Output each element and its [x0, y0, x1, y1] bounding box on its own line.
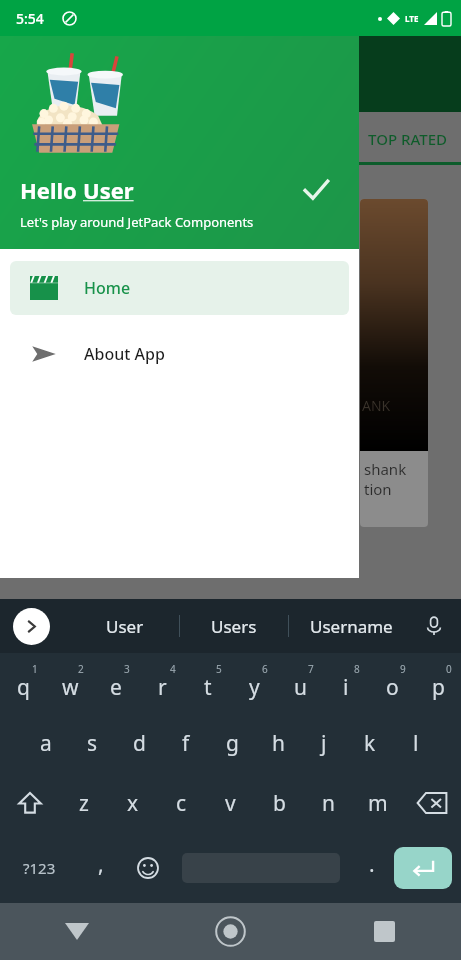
button[interactable]: k	[347, 713, 393, 773]
staticText: 6	[262, 662, 268, 676]
button[interactable]: f	[163, 713, 209, 773]
staticText: About App	[84, 343, 165, 365]
button[interactable]: r	[139, 653, 185, 713]
button[interactable]: j	[301, 713, 347, 773]
button[interactable]: Shift	[0, 773, 59, 833]
button[interactable]: w	[47, 653, 93, 713]
staticText: m	[368, 789, 388, 818]
button[interactable]: Home	[10, 261, 349, 315]
staticText: ?123	[23, 858, 56, 878]
staticText: 0	[446, 662, 452, 676]
staticText: f	[182, 729, 190, 758]
staticText: 5	[216, 662, 222, 676]
staticText: n	[322, 789, 335, 818]
button[interactable]: ?123	[0, 833, 78, 903]
staticText: 3	[124, 662, 130, 676]
staticText: TOP RATED	[368, 129, 447, 149]
staticText: v	[225, 789, 236, 818]
button[interactable]: Enter	[394, 847, 452, 889]
staticText: o	[386, 673, 399, 702]
staticText: ,	[98, 850, 104, 879]
staticText: 4	[170, 662, 176, 676]
button[interactable]: Users	[180, 599, 288, 653]
staticText: j	[321, 729, 327, 758]
button[interactable]: n	[304, 773, 353, 833]
button[interactable]: l	[393, 713, 439, 773]
staticText: s	[87, 729, 98, 758]
button[interactable]: Home	[153, 903, 307, 960]
staticText: 1	[32, 662, 38, 676]
button[interactable]: a	[22, 713, 69, 773]
staticText: 8	[354, 662, 360, 676]
staticText: x	[127, 789, 139, 818]
button[interactable]: User	[71, 599, 179, 653]
staticText: l	[413, 729, 419, 758]
staticText: 2	[78, 662, 84, 676]
button[interactable]: d	[116, 713, 163, 773]
button[interactable]: b	[255, 773, 304, 833]
button[interactable]: v	[206, 773, 255, 833]
button[interactable]: Backspace	[402, 773, 461, 833]
button[interactable]: e	[93, 653, 139, 713]
staticText: u	[294, 673, 307, 702]
staticText: ANK	[362, 396, 391, 415]
button[interactable]: Recent apps	[307, 903, 461, 960]
button[interactable]: o	[369, 653, 415, 713]
staticText: Let's play around JetPack Components	[20, 213, 254, 231]
staticText: p	[432, 673, 445, 702]
button[interactable]: About App	[10, 327, 349, 381]
staticText: LTE	[405, 13, 419, 24]
staticText: Username	[310, 615, 393, 638]
staticText: 7	[308, 662, 314, 676]
staticText: shank	[364, 459, 407, 479]
staticText: .	[369, 850, 375, 879]
staticText: t	[204, 673, 212, 702]
staticText: z	[79, 789, 89, 818]
staticText: User	[83, 175, 134, 205]
staticText: c	[176, 789, 187, 818]
button[interactable]: Back	[0, 903, 153, 960]
staticText: 9	[400, 662, 406, 676]
staticText: b	[273, 789, 286, 818]
staticText: e	[110, 673, 122, 702]
staticText: h	[272, 729, 285, 758]
button[interactable]: More suggestions	[13, 608, 50, 645]
button[interactable]: x	[108, 773, 157, 833]
button[interactable]: s	[69, 713, 116, 773]
button[interactable]: g	[209, 713, 255, 773]
staticText: Hello	[20, 175, 83, 205]
button[interactable]: p	[415, 653, 461, 713]
button[interactable]: ,	[78, 833, 124, 903]
staticText: g	[226, 729, 239, 758]
staticText: i	[343, 673, 349, 702]
staticText: r	[158, 673, 167, 702]
button[interactable]: q	[0, 653, 47, 713]
button[interactable]: m	[353, 773, 402, 833]
button[interactable]: u	[277, 653, 323, 713]
staticText: Home	[84, 277, 131, 299]
staticText: tion	[364, 479, 392, 499]
button[interactable]: Voice input	[417, 609, 451, 643]
button[interactable]: t	[185, 653, 231, 713]
staticText: d	[133, 729, 146, 758]
staticText: 5:54	[16, 9, 44, 28]
staticText: User	[106, 615, 144, 638]
button[interactable]: .	[350, 833, 394, 903]
staticText: w	[62, 673, 79, 702]
button[interactable]: i	[323, 653, 369, 713]
staticText: a	[40, 729, 52, 758]
button[interactable]: z	[59, 773, 108, 833]
button[interactable]: Confirm	[299, 173, 333, 207]
button[interactable]: h	[255, 713, 301, 773]
staticText: y	[249, 673, 260, 702]
staticText: q	[17, 673, 30, 702]
staticText: Users	[211, 615, 257, 638]
button[interactable]: Emoji	[124, 833, 172, 903]
button[interactable]: y	[231, 653, 277, 713]
button[interactable]: c	[157, 773, 206, 833]
button[interactable]: Username	[289, 599, 414, 653]
staticText: k	[364, 729, 376, 758]
